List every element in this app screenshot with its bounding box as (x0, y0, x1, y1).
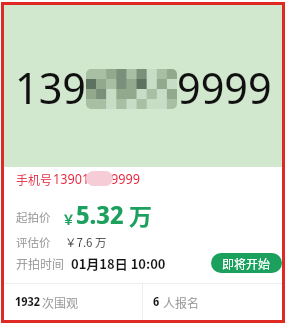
staticText: 起拍价 (16, 209, 51, 226)
staticText: 5.32 (76, 197, 124, 231)
staticText: 9999 (177, 57, 272, 117)
staticText: 手机号 (16, 171, 53, 188)
staticText: 01月18日 10:00 (71, 254, 166, 273)
staticText: 1932 (15, 294, 41, 310)
staticText: 139011119999 (53, 170, 140, 188)
staticText: 6 (153, 294, 160, 310)
staticText: ￥ (62, 209, 76, 228)
staticText: 次围观 (42, 294, 79, 311)
button[interactable]: 1932 (4, 284, 142, 320)
button[interactable]: 即将开始 (211, 253, 282, 273)
button[interactable]: 6 (143, 284, 282, 320)
staticText: 139 (15, 57, 86, 117)
staticText: 即将开始 (222, 255, 271, 272)
staticText: 开拍时间 (16, 255, 65, 272)
staticText: ￥7.6 万 (65, 234, 107, 248)
staticText: 人报名 (163, 294, 200, 311)
staticText: 万 (129, 198, 152, 231)
staticText: 评估价 (16, 234, 51, 248)
